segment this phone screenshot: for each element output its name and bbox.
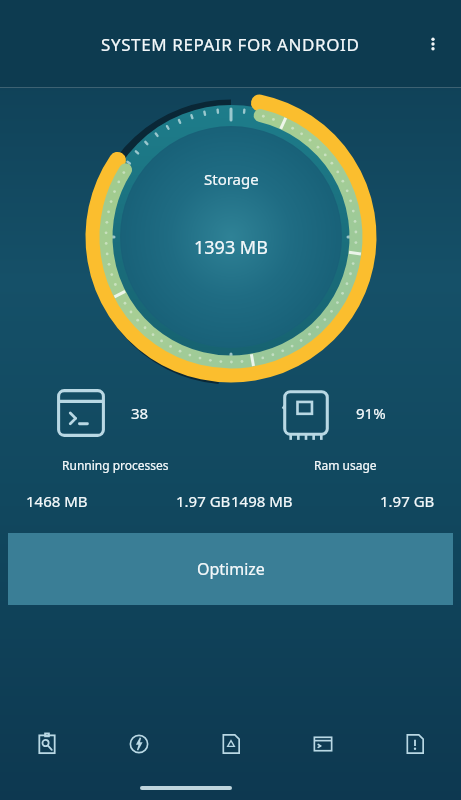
other: Ram usage bbox=[278, 385, 334, 441]
staticText: 38 bbox=[131, 403, 149, 423]
button[interactable]: Processes bbox=[277, 716, 369, 772]
other: Running processes bbox=[53, 385, 109, 441]
button[interactable]: Ram usage bbox=[230, 385, 461, 473]
staticText: Optimize bbox=[197, 558, 265, 580]
button[interactable]: More options bbox=[413, 24, 453, 64]
staticText: 1.97 GB bbox=[176, 491, 231, 511]
button[interactable]: Boost bbox=[93, 716, 185, 772]
staticText: Ram usage bbox=[314, 457, 377, 473]
button[interactable]: Running processes bbox=[0, 385, 230, 473]
staticText: 1.97 GB bbox=[380, 491, 435, 511]
staticText: 1468 MB bbox=[26, 491, 88, 511]
button[interactable]: Optimize bbox=[8, 533, 453, 605]
button[interactable]: Clean files bbox=[185, 716, 277, 772]
staticText: 1393 MB bbox=[194, 235, 268, 260]
staticText: 1498 MB bbox=[231, 491, 293, 511]
staticText: SYSTEM REPAIR FOR ANDROID bbox=[101, 33, 360, 56]
button[interactable]: Report bbox=[369, 716, 461, 772]
staticText: Running processes bbox=[62, 457, 169, 473]
staticText: 91% bbox=[356, 403, 386, 423]
button[interactable]: Scan bbox=[0, 716, 93, 772]
staticText: Storage bbox=[204, 169, 259, 189]
